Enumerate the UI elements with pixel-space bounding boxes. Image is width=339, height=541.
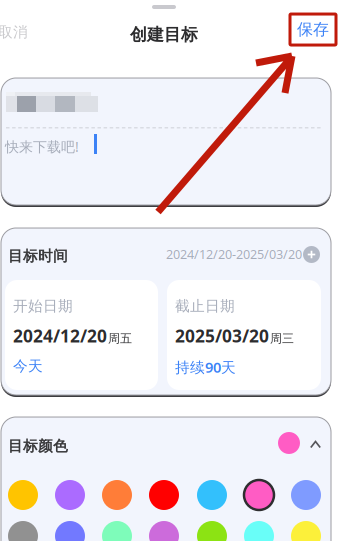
staticText: 截止日期 [175,297,235,315]
staticText: 目标颜色 [8,437,68,455]
staticText: 取消 [0,23,28,41]
button[interactable]: Goal colour swatch [149,521,179,541]
staticText: 目标时间 [8,247,68,265]
button[interactable]: Goal colour swatch [291,480,321,510]
button[interactable]: Goal colour swatch [197,521,227,541]
staticText: 创建目标 [130,24,198,45]
button[interactable]: 截止日期 [167,280,321,390]
button[interactable]: Goal colour swatch [291,521,321,541]
staticText: 开始日期 [13,297,73,315]
button[interactable]: Goal colour swatch [244,521,274,541]
button[interactable]: 取消 [0,25,38,39]
staticText: 持续90天 [175,357,236,377]
button[interactable]: 开始日期 [5,280,158,390]
button[interactable]: Clear date range [303,246,320,263]
button[interactable]: Goal colour swatch [149,480,179,510]
button[interactable]: Goal colour swatch [8,521,38,541]
staticText: 周五 [108,331,132,346]
button[interactable]: 保存 [290,14,336,45]
staticText: 周三 [270,331,294,346]
button[interactable]: Goal colour swatch [55,521,85,541]
staticText: 保存 [297,19,329,40]
button[interactable]: Goal colour swatch [8,480,38,510]
staticText: 2024/12/20 [13,324,107,348]
button[interactable]: Goal colour swatch [244,480,274,510]
staticText: 今天 [13,357,43,375]
staticText: 2024/12/20-2025/03/20 [166,245,302,263]
staticText: 2025/03/20 [175,324,269,348]
button[interactable]: Goal colour swatch [55,480,85,510]
button[interactable]: Goal colour swatch [102,521,132,541]
button[interactable]: Goal colour swatch [102,480,132,510]
button[interactable]: Goal colour swatch [197,480,227,510]
button[interactable]: Collapse colour list [310,440,321,449]
staticText: 快来下载吧! [5,137,79,156]
